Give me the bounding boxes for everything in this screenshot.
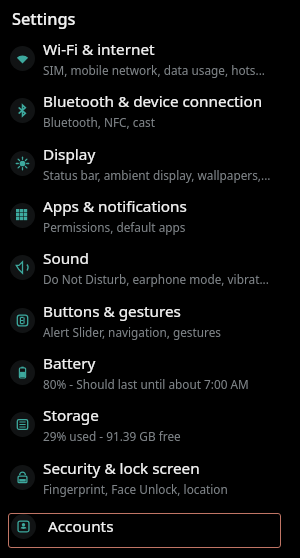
staticText: Do Not Disturb, earphone mode, vibrat...	[43, 271, 269, 287]
button[interactable]: Display	[0, 137, 300, 189]
button[interactable]: Security & lock screen	[0, 451, 300, 503]
staticText: Settings	[12, 8, 76, 30]
staticText: SIM, mobile network, data usage, hots...	[43, 62, 265, 78]
staticText: Buttons & gestures	[43, 301, 181, 322]
staticText: Bluetooth, NFC, cast	[43, 114, 155, 130]
button[interactable]: Buttons & gestures	[0, 294, 300, 346]
staticText: Sound	[43, 248, 89, 269]
staticText: Apps & notifications	[43, 196, 187, 217]
staticText: Accounts	[48, 516, 114, 537]
staticText: Wi-Fi & internet	[43, 39, 155, 60]
staticText: Status bar, ambient display, wallpapers,…	[43, 167, 271, 183]
button[interactable]: Apps & notifications	[0, 189, 300, 241]
button[interactable]: Bluetooth & device connection	[0, 84, 300, 137]
button[interactable]: Battery	[0, 346, 300, 398]
staticText: 80% - Should last until about 7:00 AM	[43, 376, 249, 392]
staticText: Bluetooth & device connection	[43, 91, 263, 112]
button[interactable]: Accounts	[0, 500, 300, 552]
button[interactable]: Wi-Fi & internet	[0, 32, 300, 84]
staticText: Display	[43, 144, 96, 165]
staticText: 29% used - 91.39 GB free	[43, 428, 181, 444]
button[interactable]: Sound	[0, 241, 300, 294]
staticText: Security & lock screen	[43, 458, 200, 479]
staticText: Alert Slider, navigation, gestures	[43, 324, 221, 340]
staticText: Permissions, default apps	[43, 219, 186, 235]
staticText: Storage	[43, 405, 99, 426]
button[interactable]: Storage	[0, 398, 300, 451]
staticText: Battery	[43, 353, 96, 374]
staticText: Fingerprint, Face Unlock, location	[43, 481, 228, 497]
